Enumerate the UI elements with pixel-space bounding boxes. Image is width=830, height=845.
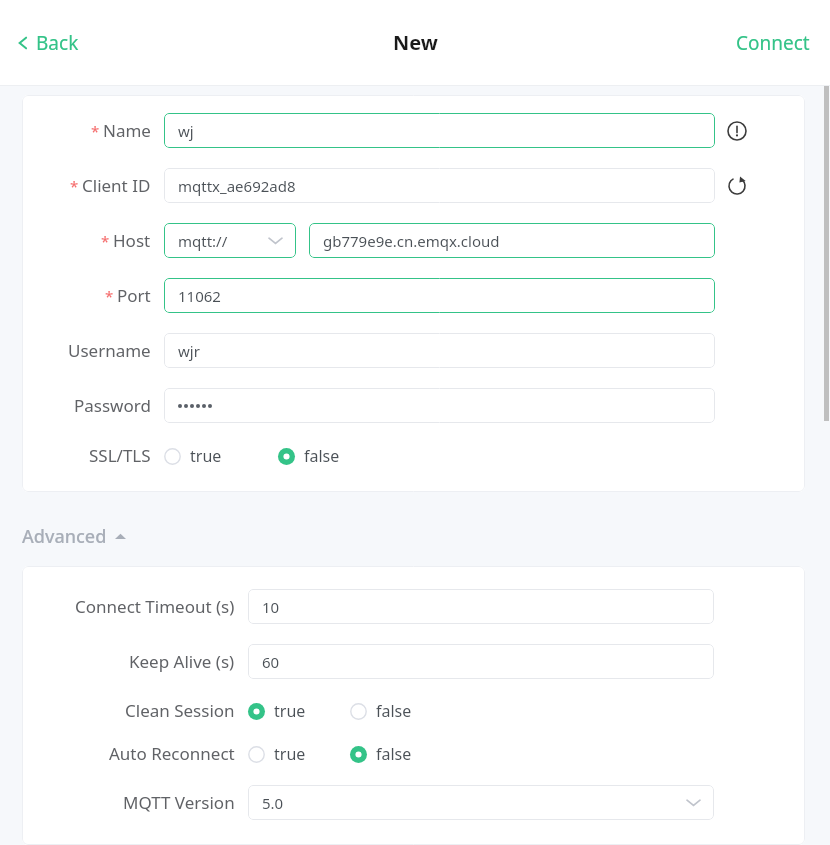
staticText: * — [105, 286, 114, 306]
staticText: Keep Alive (s) — [129, 650, 235, 673]
staticText: 5.0 — [262, 793, 284, 813]
staticText: Clean Session — [125, 699, 235, 722]
button[interactable]: true — [248, 743, 306, 765]
button[interactable]: 10 — [248, 589, 714, 624]
staticText: 11062 — [178, 286, 221, 306]
staticText: mqtt:// — [178, 231, 228, 251]
staticText: true — [274, 700, 306, 722]
staticText: false — [304, 445, 340, 467]
staticText: gb779e9e.cn.emqx.cloud — [323, 231, 500, 251]
button[interactable]: false — [350, 700, 412, 722]
button[interactable]: gb779e9e.cn.emqx.cloud — [309, 223, 715, 258]
button[interactable]: true — [248, 700, 306, 722]
staticText: * — [70, 176, 79, 196]
staticText: mqttx_ae692ad8 — [178, 176, 296, 196]
button[interactable]: mqtt:// — [164, 223, 296, 258]
staticText: MQTT Version — [123, 791, 235, 814]
button[interactable]: 60 — [248, 644, 714, 679]
button[interactable] — [164, 388, 715, 423]
staticText: 60 — [262, 652, 280, 672]
staticText: Name — [103, 119, 151, 142]
staticText: 10 — [262, 597, 280, 617]
button[interactable]: 11062 — [164, 278, 715, 313]
staticText: wj — [178, 121, 194, 141]
button[interactable]: mqttx_ae692ad8 — [164, 168, 715, 203]
button[interactable]: Refresh client id — [727, 176, 747, 196]
staticText: Username — [68, 339, 151, 362]
staticText: * — [91, 121, 100, 141]
button[interactable]: Connect — [736, 30, 810, 56]
staticText: wjr — [178, 341, 200, 361]
staticText: Host — [113, 229, 151, 252]
staticText: Auto Reconnect — [109, 742, 235, 765]
staticText: false — [376, 743, 412, 765]
staticText: false — [376, 700, 412, 722]
staticText: SSL/TLS — [89, 444, 151, 467]
button[interactable]: false — [278, 445, 340, 467]
staticText: Connect Timeout (s) — [75, 595, 235, 618]
button[interactable]: wjr — [164, 333, 715, 368]
staticText: New — [393, 29, 438, 56]
staticText: Back — [36, 30, 79, 56]
button[interactable]: Advanced — [22, 524, 126, 549]
button[interactable]: wj — [164, 113, 715, 148]
staticText: true — [190, 445, 222, 467]
button[interactable]: false — [350, 743, 412, 765]
staticText: Port — [117, 284, 151, 307]
staticText: * — [101, 231, 110, 251]
button[interactable]: Info — [727, 121, 747, 141]
button[interactable]: 5.0 — [248, 785, 714, 820]
staticText: Advanced — [22, 524, 107, 549]
button[interactable]: Back — [16, 30, 79, 56]
staticText: true — [274, 743, 306, 765]
staticText: Client ID — [82, 174, 151, 197]
staticText: Password — [74, 394, 151, 417]
button[interactable]: true — [164, 445, 222, 467]
